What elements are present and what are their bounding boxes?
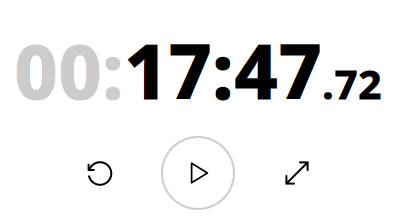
button[interactable]: Reset bbox=[78, 151, 122, 195]
staticText: 17:47 bbox=[124, 18, 322, 122]
button[interactable]: Start bbox=[160, 135, 236, 211]
staticText: .72 bbox=[322, 55, 382, 112]
button[interactable]: Expand bbox=[275, 151, 319, 195]
staticText: 00: bbox=[14, 18, 124, 122]
